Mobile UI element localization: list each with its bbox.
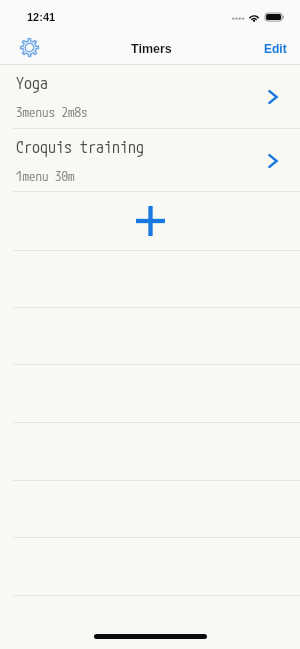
staticText: Edit [264, 42, 287, 55]
staticText: Croquis training [16, 137, 145, 157]
button[interactable]: Yoga [0, 65, 300, 129]
staticText: 1menu 30m [16, 168, 75, 184]
button[interactable]: Edit [254, 30, 300, 65]
button[interactable]: Settings [20, 38, 39, 57]
staticText: 12:41 [27, 11, 56, 23]
staticText: 3menus 2m8s [16, 104, 88, 120]
button[interactable]: Croquis training [0, 129, 300, 192]
staticText: Yoga [16, 73, 49, 93]
button[interactable]: Add timer [0, 192, 300, 251]
staticText: Timers [131, 42, 172, 56]
